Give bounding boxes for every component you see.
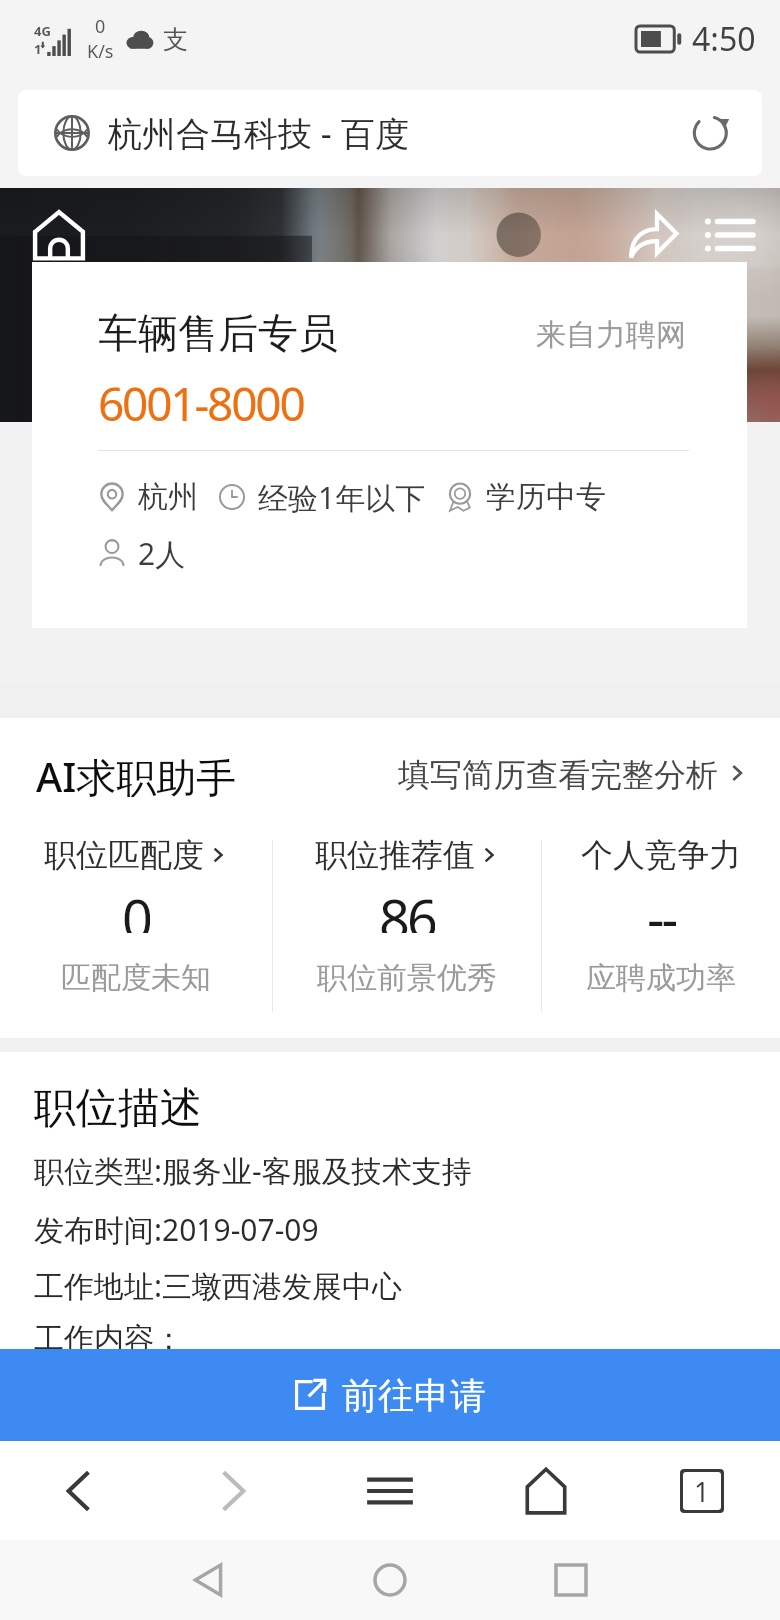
button[interactable]: Share [620,202,686,268]
staticText: 来自力聘网 [536,316,686,354]
staticText: 1 [34,40,42,56]
button[interactable]: Back [181,1552,237,1608]
staticText: AI求职助手 [36,749,237,797]
button[interactable]: Back [0,1441,156,1540]
staticText: 4:50 [692,17,756,61]
staticText: 86 [379,881,435,933]
staticText: 0 [95,14,106,39]
button[interactable]: Home [362,1552,418,1608]
staticText: 职位类型:服务业-客服及技术支持 [34,1150,472,1191]
button[interactable]: 杭州合马科技 - 百度 [18,90,762,176]
button[interactable]: Forward [156,1441,312,1540]
staticText: 1 [694,1473,710,1510]
button[interactable]: 职位匹配度 [0,834,272,1018]
staticText: 车辆售后专员 [98,308,338,358]
staticText: 应聘成功率 [586,959,736,997]
staticText: 杭州合马科技 - 百度 [108,110,409,156]
staticText: 工作地址:三墩西港发展中心 [34,1265,403,1306]
staticText: 0 [122,881,150,933]
staticText: 职位匹配度 [44,835,204,875]
staticText: 4G [34,22,51,40]
button[interactable]: Recents [543,1552,599,1608]
staticText: 经验1年以下 [258,477,426,518]
staticText: 6001-8000 [98,372,304,435]
button[interactable]: 个人竞争力 [542,834,780,1018]
button[interactable]: Refresh [688,109,736,157]
button[interactable]: Home [26,202,92,268]
staticText: 杭州 [138,478,198,516]
button[interactable]: 填写简历查看完整分析 [398,749,748,797]
staticText: 匹配度未知 [61,959,211,997]
button[interactable]: Menu [312,1441,468,1540]
staticText: K/s [87,39,114,64]
staticText: 填写简历查看完整分析 [398,755,718,791]
staticText: 个人竞争力 [581,835,741,875]
staticText: 职位描述 [34,1082,202,1135]
staticText: 发布时间:2019-07-09 [34,1209,319,1250]
button[interactable]: Tabs [624,1441,780,1540]
button[interactable]: 前往申请 [0,1349,780,1441]
staticText: 学历中专 [486,478,606,516]
button[interactable]: Home [468,1441,624,1540]
button[interactable]: 职位推荐值 [273,834,541,1018]
staticText: 工作内容： [34,1320,184,1349]
staticText: 2人 [138,533,186,574]
staticText: 职位推荐值 [315,835,475,875]
staticText: 职位前景优秀 [317,959,497,997]
staticText: 前往申请 [342,1373,486,1418]
staticText: -- [647,881,676,933]
staticText: 支 [163,24,188,55]
button[interactable]: Menu [696,202,762,268]
